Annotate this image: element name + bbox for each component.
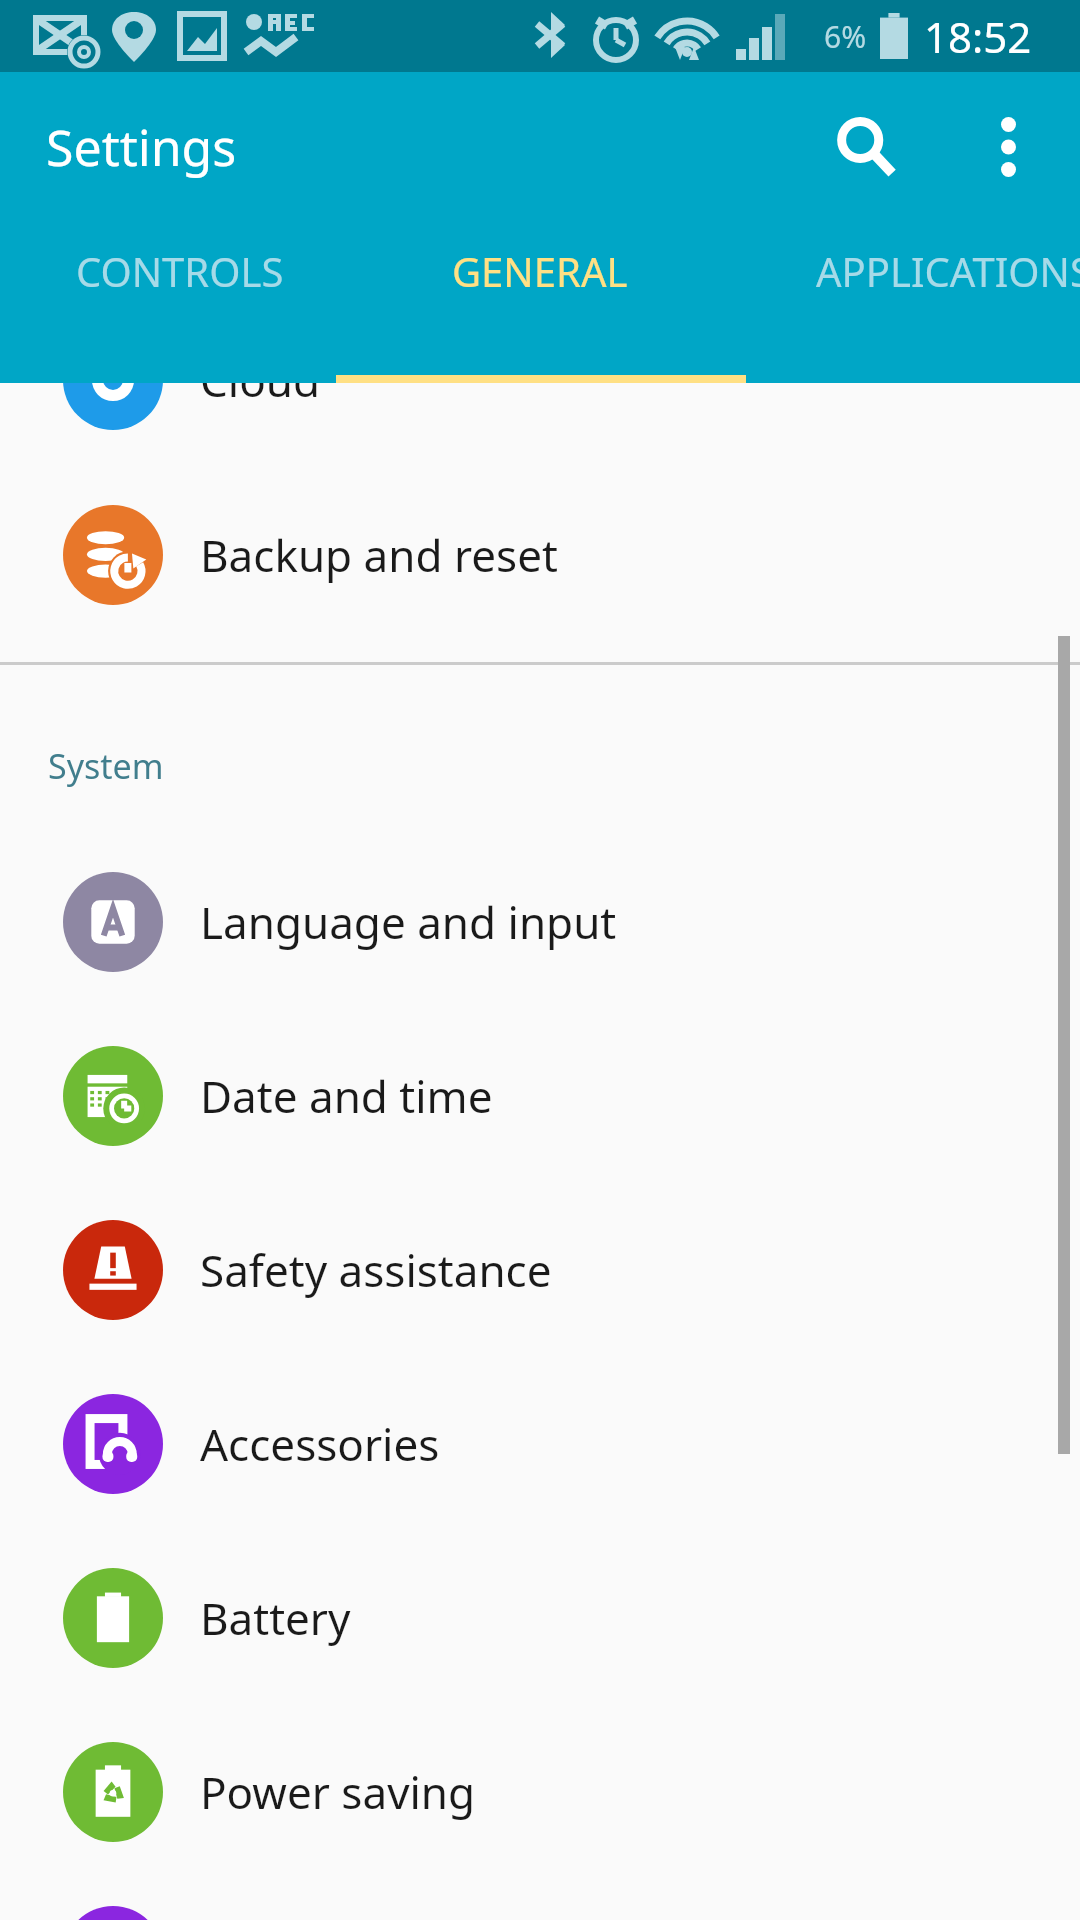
button[interactable]: Cloud xyxy=(0,293,1080,467)
button[interactable]: Search xyxy=(806,87,926,207)
button[interactable]: Power saving xyxy=(0,1705,1080,1879)
staticText: 18:52 xyxy=(924,8,1032,65)
staticText: Cloud xyxy=(200,350,321,410)
button[interactable]: Safety assistance xyxy=(0,1183,1080,1357)
staticText: Safety assistance xyxy=(200,1240,552,1300)
staticText: Date and time xyxy=(200,1066,493,1126)
staticText: System xyxy=(48,743,164,789)
button[interactable]: Language and input xyxy=(0,835,1080,1009)
staticText: Language and input xyxy=(200,892,617,952)
staticText: APPLICATIONS xyxy=(816,244,1080,298)
button[interactable]: Battery xyxy=(0,1531,1080,1705)
button[interactable]: Backup and reset xyxy=(0,468,1080,642)
staticText: Power saving xyxy=(200,1762,476,1822)
button[interactable]: APPLICATIONS xyxy=(720,222,1080,383)
button[interactable]: Date and time xyxy=(0,1009,1080,1183)
button[interactable]: CONTROLS xyxy=(0,222,360,383)
staticText: CONTROLS xyxy=(76,244,284,298)
staticText: Accessories xyxy=(200,1414,440,1474)
button[interactable]: Accessories xyxy=(0,1357,1080,1531)
staticText: Backup and reset xyxy=(200,525,558,585)
staticText: Battery xyxy=(200,1588,351,1648)
staticText: GENERAL xyxy=(452,244,628,298)
staticText: Settings xyxy=(46,113,237,181)
button[interactable]: GENERAL xyxy=(360,222,720,383)
staticText: 6% xyxy=(824,16,867,57)
button[interactable]: More options xyxy=(948,87,1068,207)
